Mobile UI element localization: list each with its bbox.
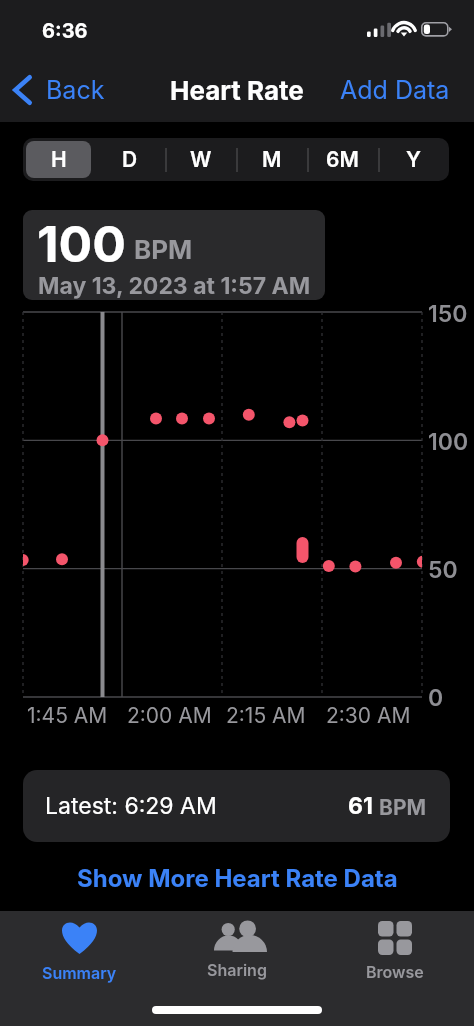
staticText: Y (406, 147, 421, 172)
staticText: D (122, 147, 138, 172)
staticText: Latest: 6:29 AM (45, 792, 217, 820)
button[interactable]: H (23, 138, 94, 181)
button[interactable]: Add Data (330, 67, 474, 113)
staticText: 2:15 AM (226, 703, 306, 728)
staticText: 0 (428, 684, 444, 712)
button[interactable]: Sharing tab (182, 911, 292, 985)
staticText: 2:00 AM (127, 703, 212, 728)
staticText: Browse (366, 962, 424, 981)
staticText: W (190, 147, 212, 172)
button[interactable]: Y (378, 138, 449, 181)
staticText: Back (46, 75, 105, 105)
button[interactable]: W (165, 138, 236, 181)
staticText: BPM (379, 795, 427, 820)
staticText: 2:30 AM (326, 703, 411, 728)
button[interactable]: D (94, 138, 165, 181)
button[interactable]: Summary tab (24, 911, 134, 988)
staticText: 150 (428, 300, 468, 328)
staticText: 6:36 (42, 19, 88, 43)
staticText: M (262, 147, 282, 172)
staticText: Sharing (207, 960, 267, 979)
staticText: Heart Rate (170, 75, 304, 106)
button[interactable]: Browse tab (340, 911, 450, 987)
staticText: Summary (42, 963, 117, 982)
button[interactable]: Show More Heart Rate Data (0, 856, 474, 901)
staticText: BPM (134, 234, 193, 265)
staticText: May 13, 2023 at 1:57 AM (38, 272, 311, 300)
staticText: 100 (428, 428, 469, 456)
staticText: Show More Heart Rate Data (77, 864, 398, 893)
staticText: 1:45 AM (27, 703, 108, 728)
staticText: 100 (37, 214, 126, 274)
button[interactable]: 6M (307, 138, 378, 181)
button[interactable]: Latest: 6:29 AM (23, 770, 450, 842)
staticText: 50 (428, 556, 458, 584)
staticText: 61 (348, 792, 373, 820)
staticText: 6M (326, 147, 359, 172)
button[interactable]: M (236, 138, 307, 181)
staticText: H (51, 147, 67, 172)
button[interactable]: Back (0, 69, 115, 111)
